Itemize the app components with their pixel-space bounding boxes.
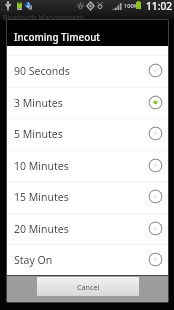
- staticText: 20 Minutes: [14, 222, 69, 236]
- button[interactable]: 10 Minutes: [7, 150, 168, 182]
- button[interactable]: 15 Minutes: [7, 181, 168, 213]
- button[interactable]: Cancel: [37, 277, 139, 296]
- staticText: 5 Minutes: [14, 127, 63, 141]
- other: Unselected option: [148, 126, 163, 141]
- staticText: 15 Minutes: [14, 190, 69, 204]
- button[interactable]: Stay On: [7, 244, 168, 276]
- staticText: 90 Seconds: [14, 64, 70, 78]
- staticText: Incoming Timeout: [14, 31, 101, 44]
- staticText: 3 Minutes: [14, 96, 63, 110]
- other: Selected option: [148, 95, 163, 110]
- staticText: 10 Minutes: [14, 159, 69, 173]
- staticText: Cancel: [77, 282, 100, 292]
- other: Unselected option: [148, 221, 163, 236]
- other: Unselected option: [148, 158, 163, 173]
- button[interactable]: 5 Minutes: [7, 118, 168, 150]
- other: Unselected option: [148, 189, 163, 204]
- staticText: Bluetooth Management: [3, 12, 84, 22]
- other: Unselected option: [148, 63, 163, 78]
- staticText: 11:02: [146, 0, 173, 13]
- staticText: Stay On: [14, 253, 53, 267]
- button[interactable]: 90 Seconds: [7, 55, 168, 87]
- staticText: 100%: [124, 2, 139, 10]
- button[interactable]: 20 Minutes: [7, 213, 168, 245]
- other: Unselected option: [148, 252, 163, 267]
- button[interactable]: 3 Minutes: [7, 87, 168, 119]
